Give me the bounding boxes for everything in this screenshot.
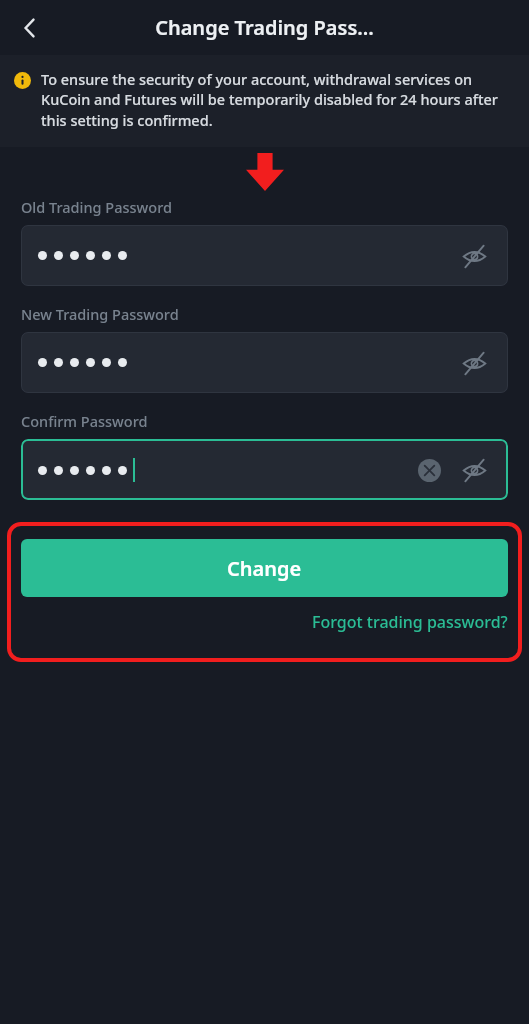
staticText: Change Trading Pass... — [155, 14, 374, 41]
button[interactable]: Show password — [458, 240, 490, 272]
staticText: To ensure the security of your account, … — [41, 69, 509, 131]
button[interactable]: Show password — [21, 332, 508, 393]
staticText: New Trading Password — [21, 304, 179, 324]
button[interactable]: Clear — [414, 455, 444, 485]
button[interactable]: Back — [8, 6, 52, 50]
button[interactable]: Clear — [21, 439, 508, 500]
staticText: Forgot trading password? — [312, 611, 508, 633]
staticText: Change — [227, 555, 302, 582]
button[interactable]: Show password — [21, 225, 508, 286]
button[interactable]: Forgot trading password? — [312, 611, 508, 633]
button[interactable]: Change — [21, 539, 508, 597]
button[interactable]: Show password — [458, 454, 490, 486]
staticText: Old Trading Password — [21, 197, 172, 217]
staticText: Confirm Password — [21, 411, 148, 431]
button[interactable]: Show password — [458, 347, 490, 379]
